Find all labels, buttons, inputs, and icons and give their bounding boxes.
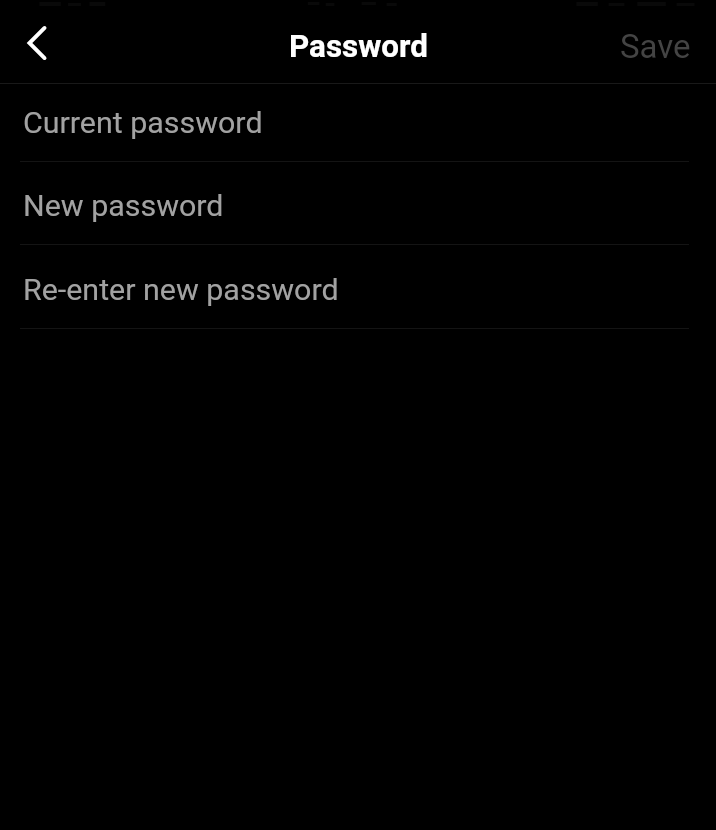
- button[interactable]: New password: [0, 161, 716, 245]
- staticText: Save: [620, 27, 691, 66]
- staticText: Current password: [23, 105, 263, 141]
- staticText: Password: [289, 28, 428, 65]
- button[interactable]: Back: [0, 6, 72, 78]
- button[interactable]: Current password: [0, 84, 716, 162]
- staticText: Re-enter new password: [23, 272, 339, 308]
- button[interactable]: Save: [594, 0, 716, 84]
- button[interactable]: Re-enter new password: [0, 244, 716, 329]
- staticText: New password: [23, 188, 224, 224]
